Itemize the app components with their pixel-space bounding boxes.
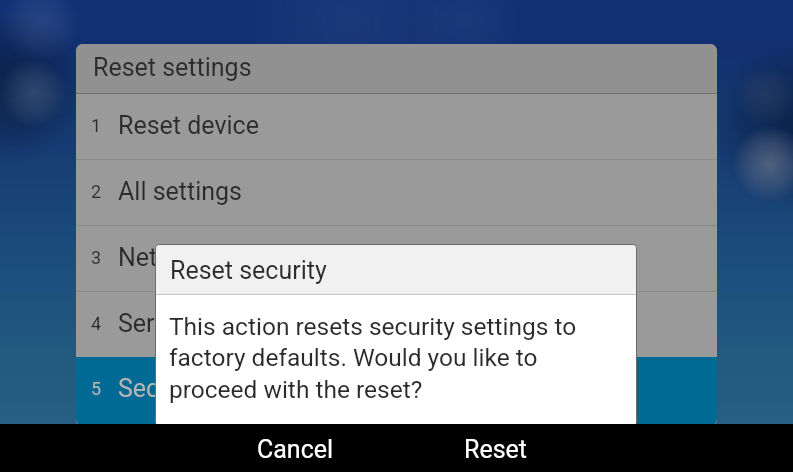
button[interactable]: Cancel	[238, 424, 353, 472]
staticText: 2	[91, 181, 102, 202]
staticText: Security settings	[118, 374, 304, 403]
staticText: Reset settings	[93, 53, 252, 82]
staticText: 4	[91, 313, 102, 334]
staticText: 1	[91, 115, 102, 136]
button[interactable]: Reset	[441, 424, 551, 472]
button[interactable]: 5	[76, 357, 717, 426]
staticText: This action resets security settings to …	[169, 312, 597, 404]
button[interactable]: 4	[76, 292, 717, 426]
staticText: Network settings	[118, 243, 308, 272]
staticText: Reset device	[118, 111, 259, 140]
button[interactable]: 2	[76, 160, 717, 426]
button[interactable]: Reset settings	[76, 44, 717, 93]
staticText: All settings	[118, 177, 243, 206]
staticText: Reset	[464, 435, 528, 464]
staticText: 5	[91, 378, 102, 399]
staticText: 3	[91, 247, 102, 268]
staticText: Cancel	[257, 435, 334, 464]
button[interactable]: 3	[76, 226, 717, 426]
button[interactable]: 1	[76, 94, 717, 426]
staticText: Server settings	[118, 309, 285, 338]
staticText: Reset security	[170, 256, 327, 285]
